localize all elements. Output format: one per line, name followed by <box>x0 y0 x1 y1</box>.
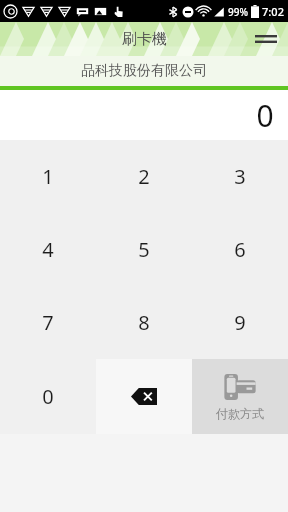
button[interactable]: 3 <box>192 140 288 213</box>
staticText: 0 <box>42 383 54 410</box>
button[interactable]: 4 <box>0 213 96 286</box>
staticText: 1 <box>42 163 54 190</box>
button[interactable]: Backspace <box>96 359 192 434</box>
button[interactable]: 6 <box>192 213 288 286</box>
button[interactable]: 8 <box>96 286 192 359</box>
staticText: 0 <box>256 95 274 136</box>
staticText: 9 <box>234 309 246 336</box>
button[interactable]: 0 <box>0 90 288 140</box>
staticText: 8 <box>138 309 150 336</box>
staticText: 6 <box>234 236 246 263</box>
button[interactable]: 9 <box>192 286 288 359</box>
staticText: 5 <box>138 236 150 263</box>
button[interactable]: 5 <box>96 213 192 286</box>
staticText: 7 <box>42 309 54 336</box>
staticText: 3 <box>234 163 246 190</box>
staticText: 2 <box>138 163 150 190</box>
button[interactable]: 1 <box>0 140 96 213</box>
staticText: 4 <box>42 236 54 263</box>
staticText: 刷卡機 <box>122 30 167 49</box>
button[interactable]: Menu <box>244 22 288 56</box>
button[interactable]: 付款方式 <box>192 359 288 434</box>
staticText: 品科技股份有限公司 <box>81 62 207 80</box>
staticText: 付款方式 <box>216 406 264 421</box>
button[interactable]: 0 <box>0 359 96 434</box>
staticText: 99% <box>228 5 248 19</box>
button[interactable]: 7 <box>0 286 96 359</box>
staticText: 7:02 <box>262 4 284 19</box>
button[interactable]: 2 <box>96 140 192 213</box>
